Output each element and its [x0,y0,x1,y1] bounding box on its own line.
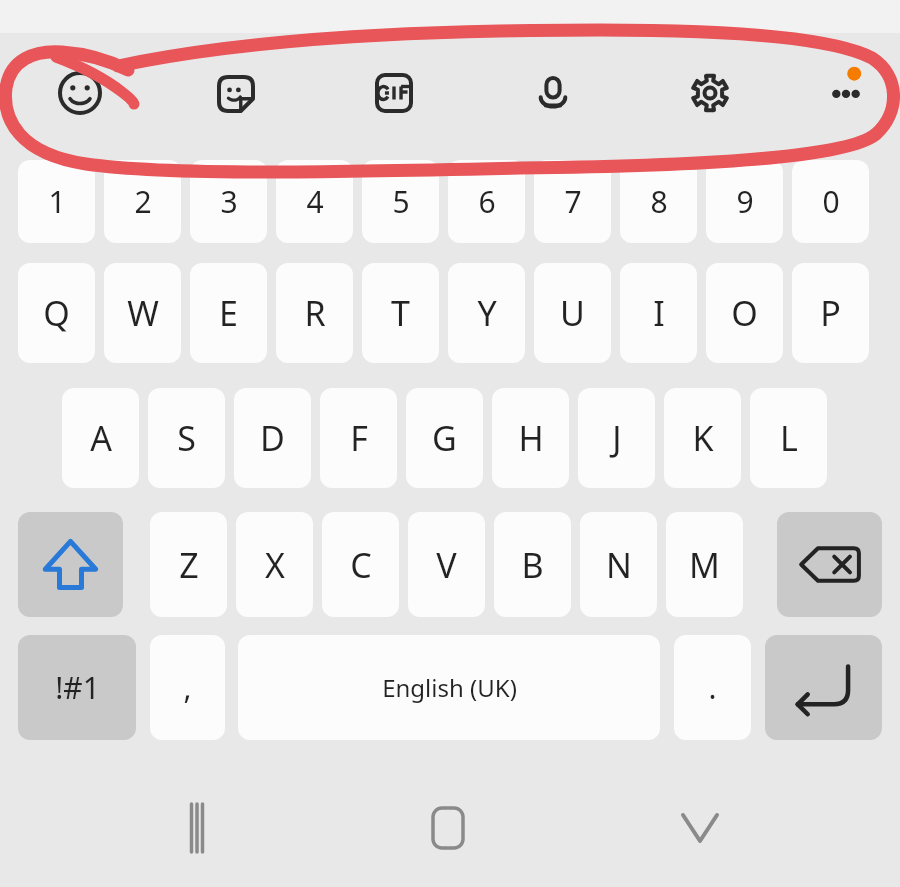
button[interactable]: P [792,263,869,363]
staticText: English (UK) [382,671,517,704]
staticText: O [731,290,758,336]
staticText: K [692,415,714,461]
staticText: , [183,667,192,708]
button[interactable]: Hide keyboard [650,778,750,878]
staticText: 2 [134,181,152,222]
button[interactable]: M [666,512,743,617]
staticText: E [219,290,238,336]
staticText: 9 [736,181,754,222]
button[interactable]: Emoji [58,71,102,115]
staticText: 5 [392,181,410,222]
button[interactable]: Enter [765,635,882,740]
staticText: M [689,542,720,588]
button[interactable]: Y [448,263,525,363]
button[interactable]: F [320,388,397,488]
button[interactable]: I [620,263,697,363]
button[interactable]: Z [150,512,227,617]
button[interactable]: 5 [362,160,439,243]
staticText: S [177,415,196,461]
button[interactable]: 1 [18,160,95,243]
staticText: W [127,290,159,336]
staticText: 3 [220,181,238,222]
button[interactable]: 9 [706,160,783,243]
button[interactable]: Voice input [531,71,575,115]
button[interactable]: E [190,263,267,363]
staticText: 1 [48,181,66,222]
button[interactable]: K [664,388,741,488]
button[interactable]: O [706,263,783,363]
staticText: 0 [822,181,840,222]
button[interactable]: Stickers [214,71,258,115]
button[interactable]: G [406,388,483,488]
button[interactable]: , [150,635,225,740]
staticText: P [820,290,841,336]
staticText: V [436,542,457,588]
button[interactable]: A [62,388,139,488]
button[interactable]: Shift [18,512,123,617]
button[interactable]: GIF [372,71,416,115]
button[interactable]: R [276,263,353,363]
button[interactable]: 2 [104,160,181,243]
button[interactable]: C [322,512,399,617]
staticText: D [260,415,285,461]
button[interactable]: D [234,388,311,488]
button[interactable]: J [578,388,655,488]
staticText: C [350,542,372,588]
staticText: G [432,415,457,461]
button[interactable]: L [750,388,827,488]
staticText: !#1 [55,667,100,708]
staticText: A [90,415,112,461]
button[interactable]: S [148,388,225,488]
button[interactable]: 8 [620,160,697,243]
button[interactable]: Home [398,778,498,878]
button[interactable]: U [534,263,611,363]
staticText: L [780,415,798,461]
button[interactable]: . [674,635,751,740]
staticText: B [521,542,544,588]
staticText: 4 [306,181,324,222]
button[interactable]: 7 [534,160,611,243]
staticText: J [612,415,622,461]
staticText: 7 [564,181,582,222]
button[interactable]: !#1 [18,635,136,740]
button[interactable]: X [236,512,313,617]
staticText: N [606,542,632,588]
button[interactable]: Backspace [777,512,882,617]
button[interactable]: T [362,263,439,363]
staticText: 8 [650,181,668,222]
staticText: H [518,415,544,461]
staticText: U [560,290,585,336]
button[interactable]: V [408,512,485,617]
staticText: R [304,290,326,336]
button[interactable]: Recents [147,778,247,878]
button[interactable]: 0 [792,160,869,243]
staticText: 6 [478,181,496,222]
staticText: T [391,290,410,336]
staticText: Z [179,542,199,588]
button[interactable]: English (UK) [238,635,660,740]
button[interactable]: 6 [448,160,525,243]
button[interactable]: More options [824,71,868,115]
button[interactable]: 3 [190,160,267,243]
staticText: Y [477,290,497,336]
button[interactable]: N [580,512,657,617]
button[interactable]: 4 [276,160,353,243]
button[interactable]: W [104,263,181,363]
button[interactable]: B [494,512,571,617]
staticText: F [350,415,368,461]
staticText: . [708,667,717,708]
button[interactable]: Q [18,263,95,363]
button[interactable]: H [492,388,569,488]
staticText: X [265,542,285,588]
button[interactable]: Settings [688,71,732,115]
staticText: I [653,290,665,336]
staticText: Q [43,290,70,336]
